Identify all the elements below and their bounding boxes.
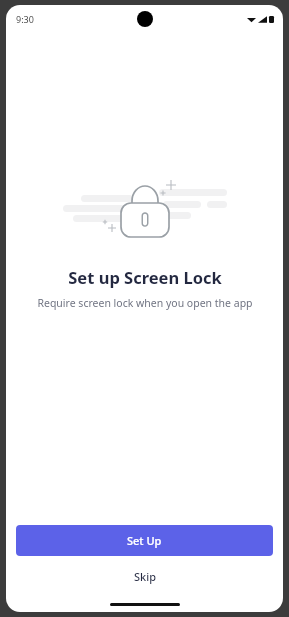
staticText: Set up Screen Lock: [68, 266, 222, 288]
staticText: Skip: [134, 569, 156, 584]
staticText: Set Up: [127, 533, 162, 548]
staticText: 9:30: [16, 13, 34, 25]
other: Home indicator: [6, 596, 283, 612]
button[interactable]: Skip: [6, 556, 283, 596]
button[interactable]: Set Up: [16, 525, 273, 556]
staticText: Require screen lock when you open the ap…: [37, 296, 253, 310]
